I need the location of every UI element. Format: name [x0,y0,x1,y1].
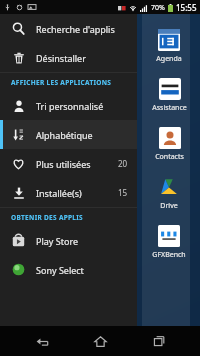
staticText: Assistance [152,103,187,113]
staticText: AFFICHER LES APPLICATIONS [11,78,112,87]
button[interactable]: Plus utilisées [0,149,137,178]
staticText: Agenda [156,54,182,64]
staticText: 15:55 [176,2,197,13]
staticText: GFXBench [152,250,186,260]
button[interactable]: Back [25,326,59,356]
button[interactable]: Recent apps [142,326,176,356]
button[interactable]: Play Store [0,226,137,255]
staticText: Recherche d'applis [36,23,115,35]
button[interactable]: Agenda [154,28,184,65]
button[interactable]: Contacts [153,126,186,163]
button[interactable]: GFXBench [150,224,188,261]
button[interactable]: Drive [156,175,182,212]
staticText: Alphabétique [36,129,93,141]
staticText: Contacts [155,152,184,162]
button[interactable]: Sony Select [0,255,137,284]
button[interactable]: Tri personnalisé [0,91,137,120]
staticText: Installée(s) [36,187,82,199]
button[interactable]: Home [83,326,117,356]
staticText: 20 [118,158,128,169]
button[interactable]: Désinstaller [0,43,137,72]
button[interactable]: Assistance [150,77,189,114]
staticText: Drive [160,201,178,211]
staticText: Tri personnalisé [36,100,104,112]
staticText: Play Store [36,235,78,247]
staticText: 15 [118,187,128,198]
staticText: Sony Select [36,264,84,276]
staticText: OBTENIR DES APPLIS [11,213,84,222]
button[interactable]: Alphabétique [0,120,137,149]
button[interactable]: Recherche d'applis [0,14,137,43]
staticText: Désinstaller [36,52,86,64]
button[interactable]: Installée(s) [0,178,137,207]
staticText: 70% [151,3,165,13]
staticText: Plus utilisées [36,158,91,170]
